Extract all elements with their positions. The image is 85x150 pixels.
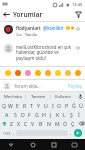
button[interactable]: Yanıtla (25, 32, 37, 37)
button[interactable]: Filter (72, 8, 85, 21)
button[interactable]: A (3, 110, 11, 119)
staticText: N (47, 120, 51, 127)
button[interactable]: Z (8, 119, 15, 128)
button[interactable]: Ö (61, 119, 69, 128)
button[interactable]: Like (74, 25, 81, 32)
staticText: C (24, 120, 28, 127)
staticText: ?123 (3, 131, 11, 136)
button[interactable]: V (29, 119, 37, 128)
staticText: Merhaba (4, 94, 22, 100)
button[interactable]: Emoji (43, 68, 53, 78)
button[interactable]: Yorum ekle... (14, 83, 68, 89)
staticText: meliLostKibroshced en çok haberdar, güze… (16, 44, 74, 62)
staticText: Z (10, 120, 13, 127)
staticText: Ş (70, 111, 73, 118)
button[interactable]: Send (73, 128, 83, 138)
staticText: İ (78, 111, 80, 118)
staticText: G (35, 111, 39, 118)
staticText: I (52, 102, 54, 109)
button[interactable]: Back (0, 139, 22, 150)
staticText: Yorum ekle... (14, 83, 41, 89)
button[interactable]: Y (35, 101, 42, 110)
button[interactable]: X (15, 119, 22, 128)
button[interactable]: flodyanlart (0, 22, 85, 40)
staticText: T (30, 102, 33, 109)
button[interactable]: B (37, 119, 45, 128)
button[interactable]: G (33, 110, 40, 119)
button[interactable]: W (7, 101, 14, 110)
staticText: Ğ (72, 102, 76, 109)
button[interactable]: Emoji (33, 68, 43, 78)
staticText: F (28, 111, 31, 118)
staticText: Q (2, 102, 7, 109)
staticText: M (55, 120, 60, 127)
button[interactable]: Like (74, 44, 81, 51)
staticText: @kunlikir (43, 25, 64, 31)
button[interactable]: I (49, 101, 56, 110)
button[interactable]: Shift (0, 119, 8, 128)
button[interactable]: J (47, 110, 54, 119)
button[interactable]: F (26, 110, 33, 119)
button[interactable]: Home (22, 139, 43, 150)
button[interactable]: L (61, 110, 68, 119)
button[interactable]: Hide keyboard (64, 139, 85, 150)
button[interactable]: Emoji (53, 68, 63, 78)
staticText: , (13, 130, 15, 137)
button[interactable]: Emoji (23, 68, 33, 78)
button[interactable]: Emoji (63, 68, 73, 78)
staticText: E (16, 102, 19, 109)
button[interactable]: H (40, 110, 47, 119)
staticText: Y (37, 102, 40, 109)
button[interactable]: Ç (69, 119, 77, 128)
staticText: K (56, 111, 60, 118)
staticText: W (8, 102, 13, 109)
staticText: Ç (71, 120, 75, 127)
button[interactable]: Comma (11, 128, 16, 138)
button[interactable]: S (11, 110, 19, 119)
button[interactable]: P (63, 101, 70, 110)
button[interactable]: Backspace (77, 119, 85, 128)
staticText: Ö (63, 120, 68, 127)
staticText: Yorumlar (13, 10, 43, 19)
staticText: P (65, 102, 69, 109)
button[interactable]: Q (1, 101, 7, 110)
staticText: J (50, 111, 52, 118)
staticText: Ü (79, 102, 83, 109)
button[interactable]: K (54, 110, 61, 119)
button[interactable]: Recents (43, 139, 64, 150)
button[interactable]: D (19, 110, 26, 119)
button[interactable]: İ (75, 110, 82, 119)
button[interactable]: E (14, 101, 21, 110)
button[interactable]: ?123 (2, 128, 11, 138)
button[interactable]: N (45, 119, 53, 128)
button[interactable]: Kullanıcı (51, 92, 76, 101)
button[interactable]: Paylaş (68, 83, 82, 89)
button[interactable]: U (42, 101, 49, 110)
staticText: . (70, 130, 72, 137)
button[interactable]: Tamam (26, 92, 51, 101)
staticText: 13:45 (72, 2, 83, 7)
button[interactable]: meliLostKibroshced en çok haberdar, güze… (0, 41, 85, 66)
staticText: V (31, 120, 35, 127)
button[interactable]: Period (68, 128, 73, 138)
staticText: A (5, 111, 9, 118)
button[interactable]: M (53, 119, 61, 128)
button[interactable]: Merhaba (0, 92, 26, 101)
button[interactable]: Emoji (73, 68, 82, 78)
button[interactable]: Ş (68, 110, 75, 119)
button[interactable]: Back (0, 8, 13, 21)
button[interactable]: Voice input (76, 92, 85, 101)
staticText: 2sa (16, 32, 22, 37)
button[interactable]: C (22, 119, 29, 128)
staticText: L (63, 111, 66, 118)
button[interactable]: Emoji (13, 68, 23, 78)
button[interactable]: T (28, 101, 35, 110)
staticText: U (44, 102, 48, 109)
button[interactable]: O (56, 101, 63, 110)
button[interactable]: Ğ (70, 101, 77, 110)
button[interactable]: R (21, 101, 28, 110)
button[interactable]: Ü (77, 101, 84, 110)
staticText: H (42, 111, 46, 118)
button[interactable]: Emoji (3, 68, 13, 78)
